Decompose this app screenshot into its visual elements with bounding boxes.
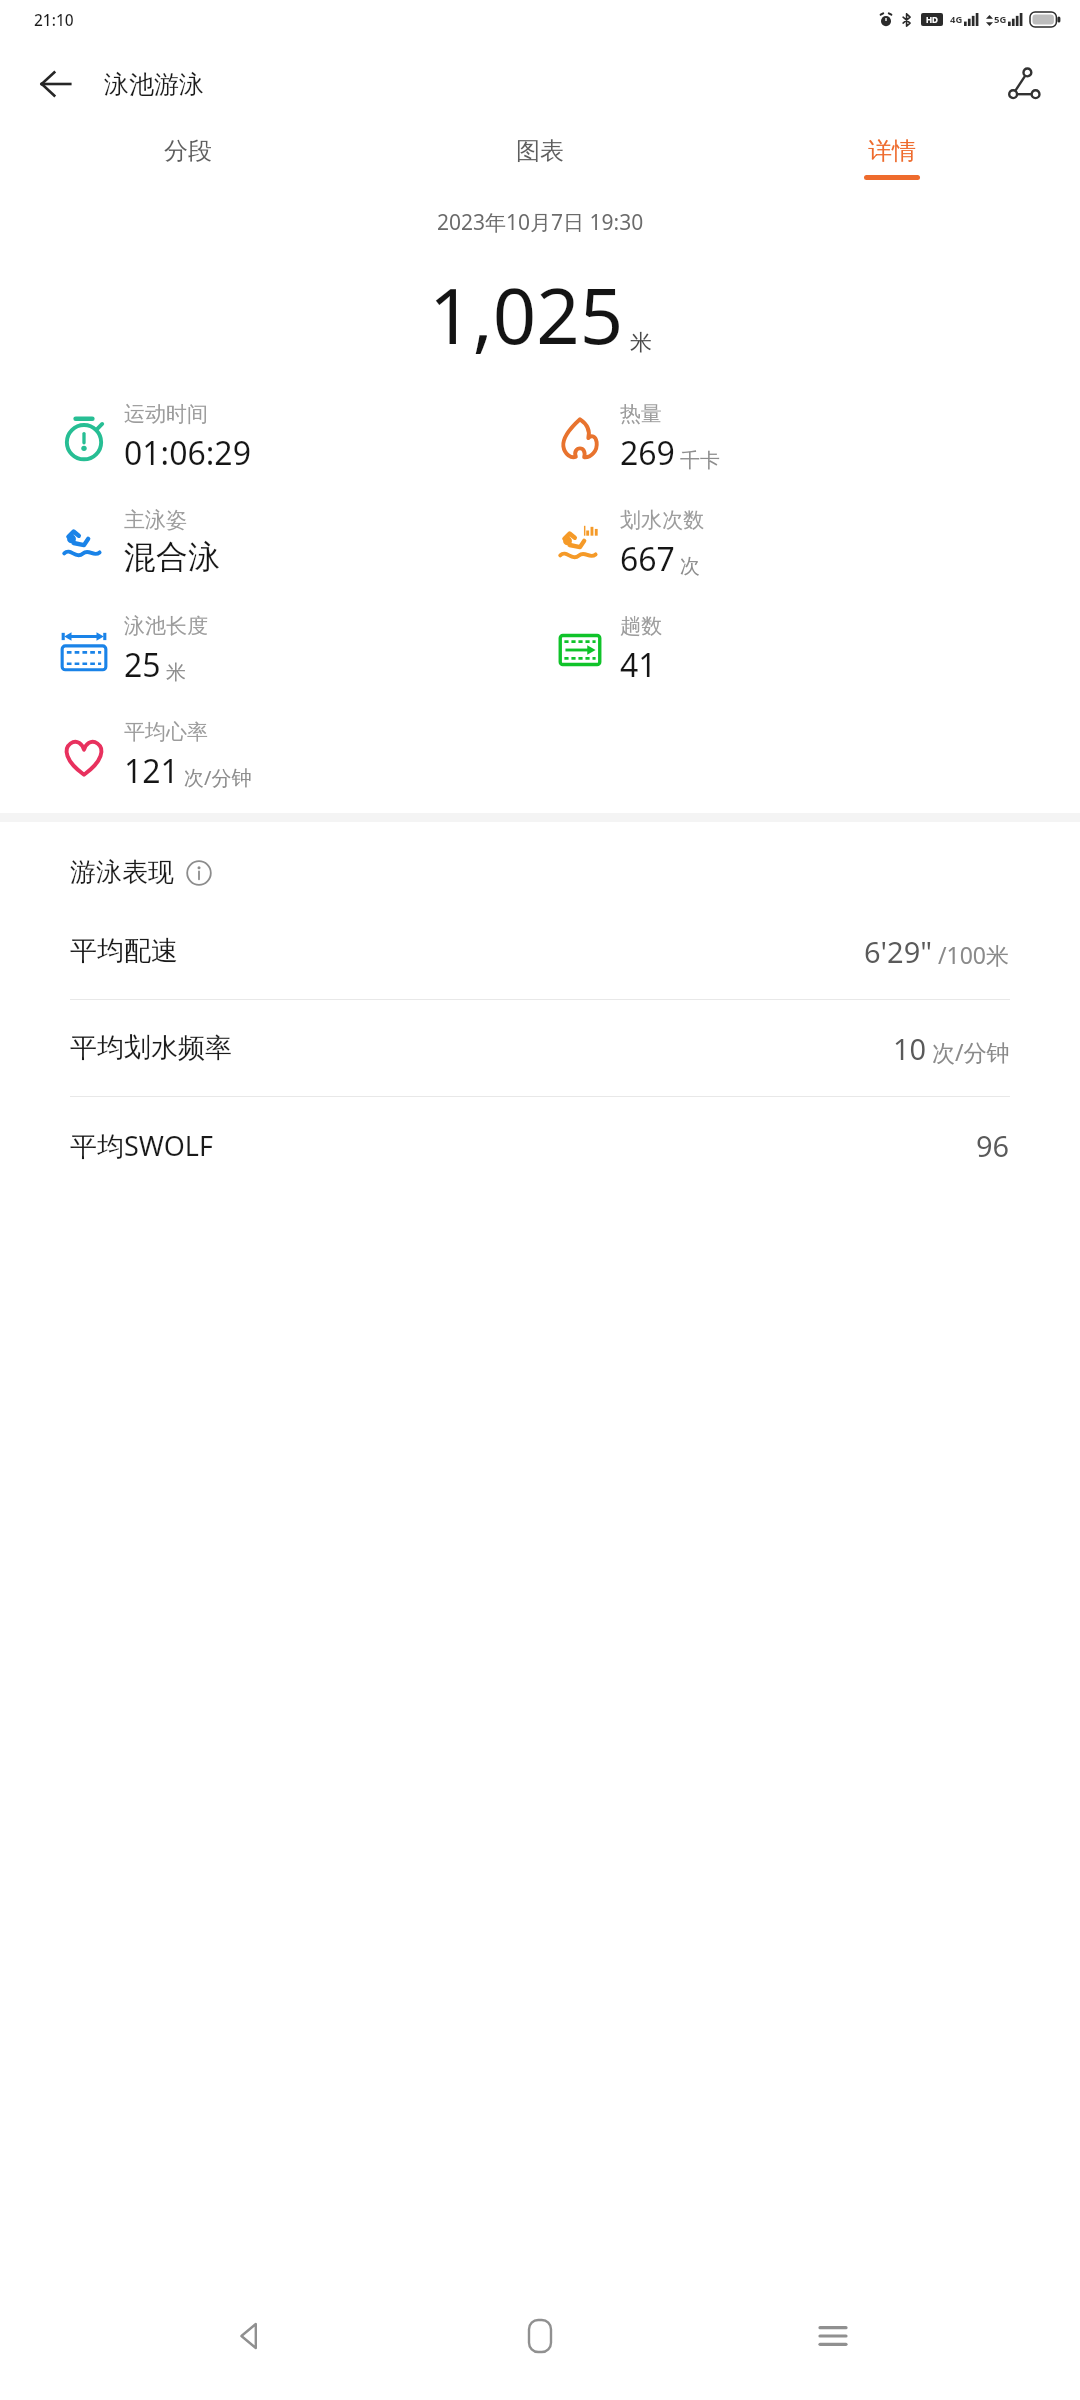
- staticText: 图表: [516, 136, 564, 166]
- button[interactable]: 趟数: [554, 613, 662, 687]
- staticText: 游泳表现: [70, 856, 174, 889]
- other: Battery 91 percent: [1030, 12, 1060, 27]
- staticText: 划水次数: [620, 507, 704, 533]
- button[interactable]: 详情: [854, 130, 930, 186]
- button[interactable]: Back: [203, 2291, 293, 2381]
- staticText: 米: [166, 660, 186, 685]
- button[interactable]: 主泳姿: [58, 507, 220, 577]
- button[interactable]: 平均SWOLF: [70, 1097, 1010, 1193]
- staticText: HD: [926, 14, 938, 25]
- staticText: 1,025: [429, 263, 624, 367]
- staticText: 2023年10月7日 19:30: [437, 208, 644, 237]
- button[interactable]: 热量: [554, 401, 720, 475]
- staticText: 次: [680, 554, 700, 579]
- staticText: 详情: [868, 136, 916, 166]
- button[interactable]: Recent apps: [788, 2291, 878, 2381]
- staticText: 平均配速: [70, 934, 178, 968]
- button[interactable]: 游泳表现: [70, 856, 1010, 889]
- staticText: 5G: [994, 13, 1007, 26]
- button[interactable]: 划水次数: [554, 507, 704, 581]
- staticText: 泳池长度: [124, 613, 208, 639]
- staticText: 次/分钟: [932, 1036, 1010, 1067]
- staticText: 混合泳: [124, 537, 220, 577]
- staticText: /100米: [938, 939, 1010, 970]
- button[interactable]: 平均配速: [70, 903, 1010, 999]
- staticText: 运动时间: [124, 401, 208, 427]
- staticText: 平均划水频率: [70, 1031, 232, 1065]
- staticText: 次/分钟: [184, 764, 252, 791]
- staticText: 米: [630, 329, 652, 357]
- staticText: 平均心率: [124, 719, 208, 745]
- staticText: 667: [620, 537, 675, 581]
- button[interactable]: 分段: [150, 130, 226, 186]
- staticText: 平均SWOLF: [70, 1127, 213, 1164]
- button[interactable]: 泳池长度: [58, 613, 208, 687]
- button[interactable]: 图表: [502, 130, 578, 186]
- button[interactable]: Home: [495, 2291, 585, 2381]
- staticText: 41: [620, 643, 657, 687]
- button[interactable]: 平均划水频率: [70, 1000, 1010, 1096]
- staticText: 96: [976, 1126, 1010, 1165]
- staticText: 分段: [164, 136, 212, 166]
- button[interactable]: Share: [994, 54, 1054, 114]
- staticText: 泳池游泳: [104, 69, 204, 100]
- staticText: 千卡: [680, 448, 720, 473]
- button[interactable]: 平均心率: [58, 719, 252, 793]
- other: Info: [186, 860, 212, 886]
- staticText: 6'29": [864, 932, 933, 971]
- staticText: 主泳姿: [124, 507, 187, 533]
- staticText: 01:06:29: [124, 431, 251, 475]
- button[interactable]: 运动时间: [58, 401, 251, 475]
- staticText: 10: [893, 1029, 927, 1068]
- staticText: 269: [620, 431, 675, 475]
- staticText: 热量: [620, 401, 662, 427]
- staticText: 趟数: [620, 613, 662, 639]
- staticText: 25: [124, 643, 161, 687]
- button[interactable]: Back: [28, 56, 84, 112]
- staticText: 121: [124, 749, 179, 793]
- staticText: 21:10: [34, 9, 74, 30]
- staticText: 4G: [950, 13, 963, 26]
